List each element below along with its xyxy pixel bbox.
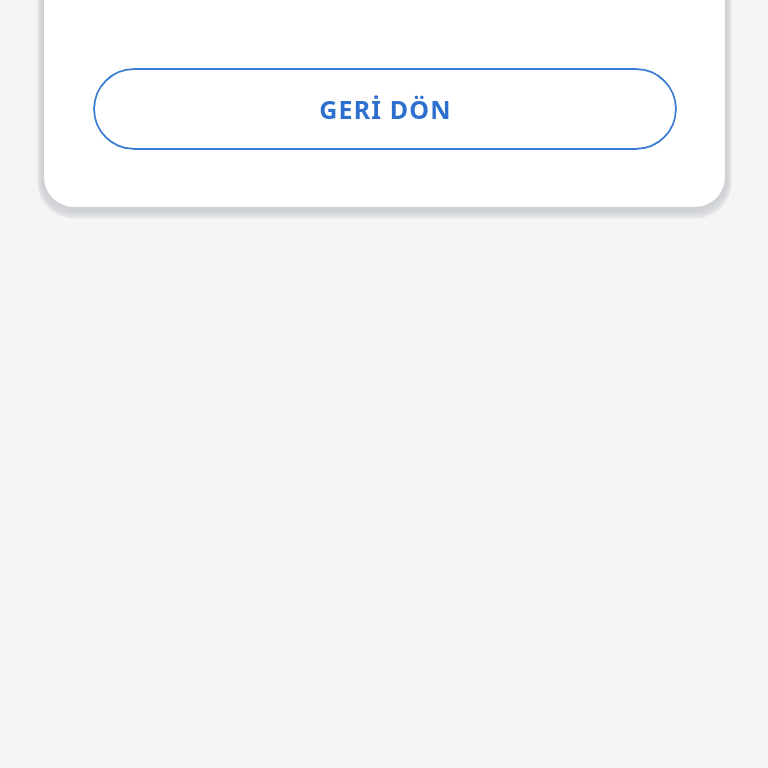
button[interactable]: GERİ DÖN <box>93 68 677 150</box>
staticText: GERİ DÖN <box>319 92 452 126</box>
